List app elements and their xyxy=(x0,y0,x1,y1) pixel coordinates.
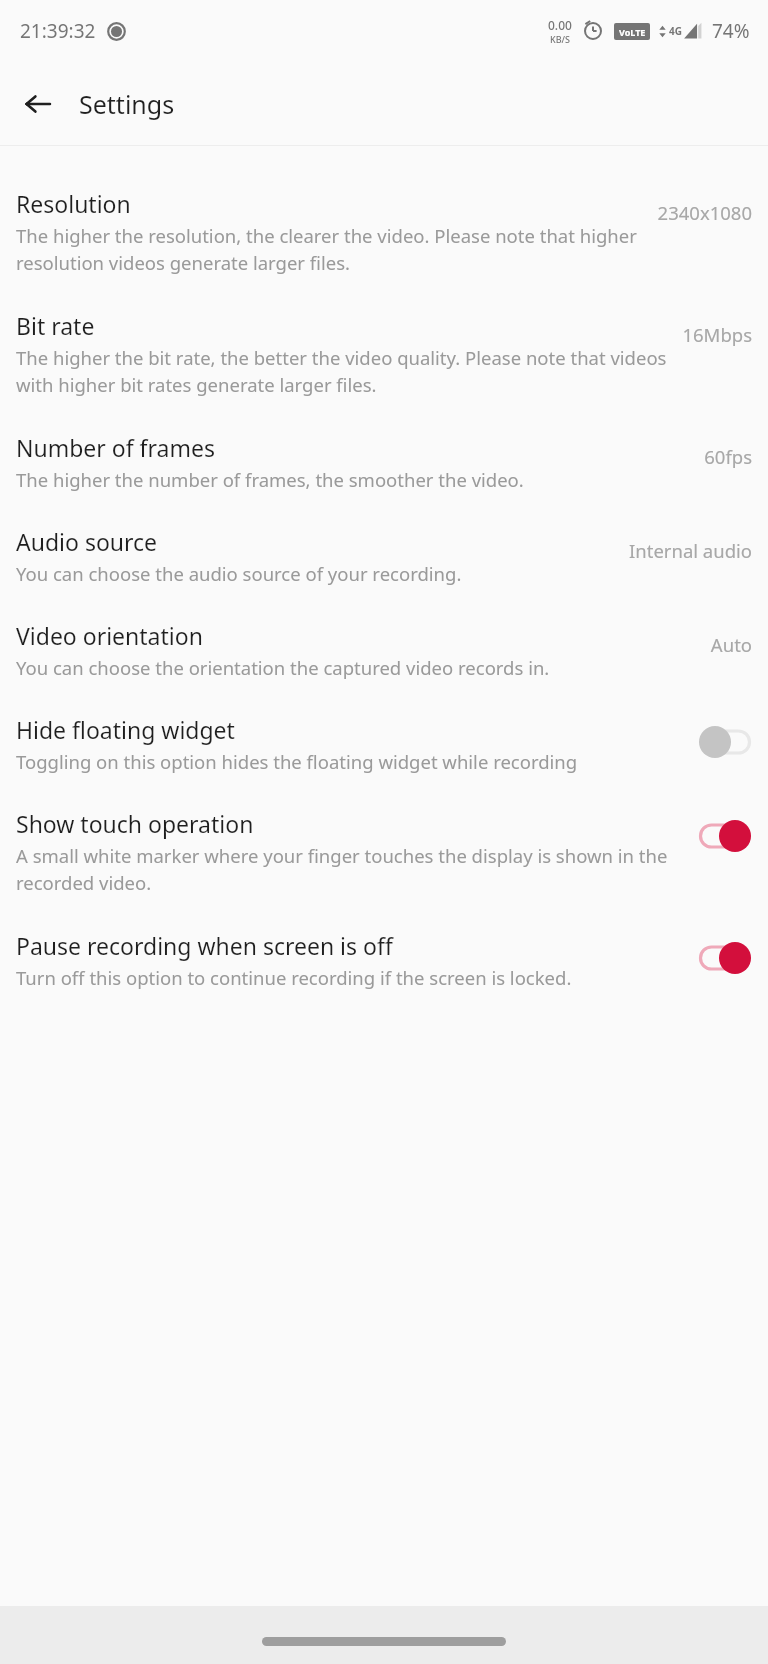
staticText: Bit rate xyxy=(16,310,95,341)
staticText: Settings xyxy=(79,87,175,121)
staticText: Pause recording when screen is off xyxy=(16,930,393,961)
staticText: Auto xyxy=(710,632,752,657)
staticText: Video orientation xyxy=(16,620,203,651)
button[interactable]: Back xyxy=(14,80,62,128)
button[interactable]: Hide floating widget xyxy=(0,710,768,778)
staticText: Internal audio xyxy=(628,538,752,563)
staticText: 4G xyxy=(669,24,682,38)
staticText: You can choose the audio source of your … xyxy=(16,561,462,586)
button[interactable]: Pause recording when screen is off xyxy=(0,926,768,994)
staticText: VoLTE xyxy=(619,26,646,38)
button[interactable]: Audio source xyxy=(0,522,768,590)
staticText: Toggling on this option hides the floati… xyxy=(16,749,578,774)
staticText: 21:39:32 xyxy=(20,18,96,44)
staticText: The higher the number of frames, the smo… xyxy=(16,467,524,492)
button[interactable]: Show touch operation xyxy=(0,804,768,900)
button[interactable]: Bit rate xyxy=(0,306,768,402)
staticText: Number of frames xyxy=(16,432,215,463)
button[interactable]: Number of frames xyxy=(0,428,768,496)
staticText: Resolution xyxy=(16,188,131,219)
staticText: Show touch operation xyxy=(16,808,254,839)
staticText: 0.00 xyxy=(548,17,572,33)
button[interactable]: Show touch operation xyxy=(698,816,752,856)
staticText: 2340x1080 xyxy=(657,200,752,225)
button[interactable]: Pause recording when screen is off xyxy=(698,938,752,978)
staticText: You can choose the orientation the captu… xyxy=(16,655,550,680)
staticText: The higher the bit rate, the better the … xyxy=(16,345,668,398)
button[interactable]: Hide floating widget xyxy=(698,722,752,762)
staticText: 16Mbps xyxy=(682,322,752,347)
staticText: 74% xyxy=(712,18,750,44)
staticText: The higher the resolution, the clearer t… xyxy=(16,223,643,276)
button[interactable]: Video orientation xyxy=(0,616,768,684)
staticText: KB/S xyxy=(550,33,570,45)
button[interactable]: Resolution xyxy=(0,184,768,280)
staticText: Hide floating widget xyxy=(16,714,235,745)
staticText: 60fps xyxy=(704,444,752,469)
staticText: A small white marker where your finger t… xyxy=(16,843,682,896)
staticText: Turn off this option to continue recordi… xyxy=(16,965,572,990)
staticText: Audio source xyxy=(16,526,158,557)
